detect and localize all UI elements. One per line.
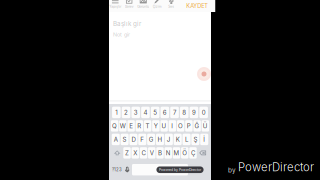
button[interactable]: M [173, 147, 180, 159]
staticText: F [140, 136, 144, 143]
button[interactable]: Ğ [193, 120, 201, 132]
button[interactable]: 7 [170, 107, 179, 118]
staticText: S [123, 136, 127, 143]
button[interactable]: T [144, 120, 151, 132]
button[interactable]: G [147, 134, 155, 145]
button[interactable]: 9 [190, 107, 198, 118]
button[interactable]: F [138, 134, 146, 145]
staticText: 6 [163, 109, 167, 116]
staticText: G [149, 136, 154, 143]
staticText: 7 [173, 109, 176, 116]
button[interactable]: Ü [202, 120, 209, 132]
staticText: 2 [124, 109, 128, 116]
button[interactable]: Ses [164, 0, 178, 12]
staticText: Görev [125, 5, 134, 8]
button[interactable]: 5 [151, 107, 159, 118]
button[interactable]: W [119, 120, 127, 132]
staticText: I [171, 122, 173, 130]
button[interactable] [132, 164, 188, 175]
staticText: T [146, 122, 150, 130]
staticText: M [173, 149, 179, 157]
button[interactable]: 0 [199, 107, 208, 118]
button[interactable]: 4 [141, 107, 150, 118]
staticText: Ö [182, 149, 187, 157]
button[interactable]: Voice input [123, 164, 131, 175]
staticText: B [158, 149, 162, 157]
button[interactable]: . [189, 164, 197, 175]
button[interactable]: L [182, 134, 191, 145]
button[interactable]: Z [123, 147, 131, 159]
button[interactable]: Ş [191, 134, 199, 145]
button[interactable]: Yapıştır [108, 0, 122, 12]
staticText: 9 [192, 109, 196, 116]
staticText: Q [112, 122, 117, 130]
staticText: Ş [193, 136, 197, 143]
staticText: . [192, 166, 194, 173]
button[interactable]: X [131, 147, 139, 159]
staticText: Görüntü [137, 5, 149, 8]
button[interactable]: Ö [181, 147, 188, 159]
button[interactable]: C [140, 147, 147, 159]
button[interactable]: J [165, 134, 173, 145]
button[interactable]: 1 [112, 107, 121, 118]
staticText: A [114, 136, 118, 143]
button[interactable]: N [164, 147, 172, 159]
staticText: X [133, 149, 137, 157]
staticText: V [150, 149, 154, 157]
staticText: 1 [115, 109, 117, 116]
staticText: E [129, 122, 133, 130]
staticText: Y [154, 122, 158, 130]
button[interactable]: R [136, 120, 143, 132]
staticText: U [162, 122, 167, 130]
staticText: 0 [202, 109, 206, 116]
staticText: O [178, 122, 183, 130]
button[interactable]: Add note [197, 67, 211, 81]
staticText: C [141, 149, 145, 157]
button[interactable]: ?123 [111, 164, 122, 175]
button[interactable]: KAYDET [186, 0, 208, 12]
button[interactable]: K [174, 134, 182, 145]
staticText: J [167, 136, 171, 143]
button[interactable] [198, 164, 209, 175]
staticText: R [137, 122, 141, 130]
button[interactable]: V [148, 147, 155, 159]
staticText: PowerDirector [238, 160, 314, 174]
button[interactable]: Backspace [197, 147, 208, 159]
button[interactable]: O [177, 120, 184, 132]
button[interactable]: P [185, 120, 193, 132]
staticText: Ç [191, 149, 195, 157]
staticText: by [228, 166, 236, 174]
button[interactable]: S [121, 134, 129, 145]
staticText: L [185, 136, 188, 143]
staticText: P [187, 122, 191, 130]
staticText: İ [203, 136, 205, 143]
button[interactable]: Y [152, 120, 160, 132]
staticText: Başlık gir [113, 20, 141, 28]
button[interactable]: Görüntü [136, 0, 150, 12]
button[interactable]: A [112, 134, 120, 145]
button[interactable]: Ç [189, 147, 197, 159]
button[interactable]: 3 [131, 107, 140, 118]
button[interactable]: U [160, 120, 168, 132]
button[interactable]: Shift [112, 147, 122, 159]
button[interactable]: İ [200, 134, 208, 145]
button[interactable]: Q [111, 120, 118, 132]
button[interactable]: I [169, 120, 176, 132]
staticText: Z [125, 149, 129, 157]
button[interactable]: H [156, 134, 164, 145]
button[interactable]: 2 [122, 107, 130, 118]
staticText: Yapıştır [109, 5, 121, 8]
button[interactable]: 6 [161, 107, 169, 118]
button[interactable]: B [156, 147, 164, 159]
staticText: H [157, 136, 162, 143]
button[interactable]: E [127, 120, 135, 132]
staticText: W [120, 122, 126, 130]
staticText: Ü [203, 122, 208, 130]
staticText: KAYDET [186, 3, 208, 9]
button[interactable]: D [129, 134, 137, 145]
staticText: D [131, 136, 135, 143]
button[interactable]: Görev [122, 0, 136, 12]
staticText: Powered by PowerDirector [159, 168, 201, 172]
button[interactable]: Çizim [150, 0, 164, 12]
button[interactable]: 8 [180, 107, 189, 118]
